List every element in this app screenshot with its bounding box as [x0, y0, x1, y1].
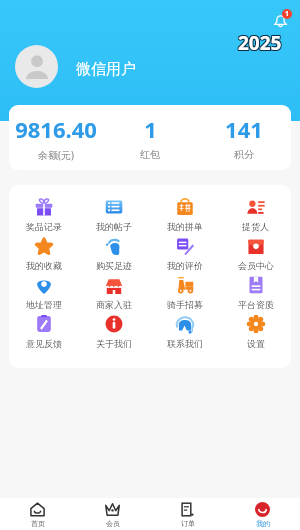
staticText: 地址管理 — [26, 299, 62, 310]
staticText: 2025 — [238, 29, 282, 55]
staticText: 2025 — [239, 30, 283, 56]
button[interactable]: 9816.40 — [9, 114, 103, 162]
staticText: 购买足迹 — [96, 260, 132, 271]
staticText: 骑手招募 — [167, 299, 203, 310]
staticText: 141 — [225, 114, 263, 144]
button[interactable]: 1 — [103, 114, 197, 161]
staticText: 关于我们 — [96, 338, 132, 349]
button[interactable]: 骑手招募 — [149, 276, 220, 315]
staticText: 设置 — [247, 338, 265, 349]
staticText: 1 — [144, 114, 157, 144]
button[interactable]: 我的收藏 — [9, 237, 79, 276]
staticText: 2025 — [238, 30, 282, 56]
button[interactable]: 地址管理 — [9, 276, 79, 315]
button[interactable]: 141 — [197, 114, 291, 161]
staticText: 余额(元) — [38, 148, 74, 162]
staticText: 意见反馈 — [26, 338, 62, 349]
button[interactable]: 意见反馈 — [9, 315, 79, 354]
button[interactable]: 奖品记录 — [9, 198, 79, 237]
button[interactable]: 我的拼单 — [149, 198, 220, 237]
button[interactable]: 商家入驻 — [79, 276, 149, 315]
staticText: 平台资质 — [238, 299, 274, 310]
staticText: 我的拼单 — [167, 221, 203, 232]
button[interactable]: 关于我们 — [79, 315, 149, 354]
staticText: 1 — [285, 9, 290, 19]
staticText: 9816.40 — [15, 114, 97, 144]
staticText: 奖品记录 — [26, 221, 62, 232]
button[interactable]: 购买足迹 — [79, 237, 149, 276]
staticText: 我的评价 — [167, 260, 203, 271]
button[interactable]: 订单 — [150, 498, 225, 530]
staticText: 会员中心 — [238, 260, 274, 271]
staticText: 2025 — [237, 29, 281, 55]
staticText: 红包 — [140, 148, 160, 161]
staticText: 积分 — [234, 148, 254, 161]
staticText: 会员 — [106, 519, 120, 528]
staticText: 我的收藏 — [26, 260, 62, 271]
button[interactable]: Notifications — [270, 9, 292, 31]
button[interactable]: 提货人 — [220, 198, 291, 237]
staticText: 商家入驻 — [96, 299, 132, 310]
button[interactable]: 会员中心 — [220, 237, 291, 276]
button[interactable]: 首页 — [0, 498, 75, 530]
staticText: 微信用户 — [76, 60, 136, 79]
button[interactable]: 会员 — [75, 498, 150, 530]
button[interactable]: 我的评价 — [149, 237, 220, 276]
staticText: 2025 — [237, 31, 281, 57]
button[interactable]: 我的帖子 — [79, 198, 149, 237]
staticText: 我的 — [256, 519, 270, 528]
staticText: 2025 — [238, 31, 282, 57]
staticText: 我的帖子 — [96, 221, 132, 232]
button[interactable]: 设置 — [220, 315, 291, 354]
button[interactable]: 联系我们 — [149, 315, 220, 354]
staticText: 2025 — [237, 30, 281, 56]
staticText: 首页 — [31, 519, 45, 528]
staticText: 联系我们 — [167, 338, 203, 349]
button[interactable]: 我的 — [225, 498, 300, 530]
staticText: 提货人 — [242, 221, 269, 232]
button[interactable]: 平台资质 — [220, 276, 291, 315]
staticText: 2025 — [239, 29, 283, 55]
staticText: 2025 — [239, 31, 283, 57]
staticText: 订单 — [181, 519, 195, 528]
